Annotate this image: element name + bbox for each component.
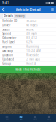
staticText: Fleet A [26, 62, 36, 65]
staticText: Location [2, 53, 13, 57]
staticText: 48 mph [26, 32, 37, 35]
button[interactable]: Group [0, 62, 56, 66]
staticText: Running [26, 45, 39, 48]
button[interactable]: Back [0, 6, 7, 13]
staticText: 62% [26, 41, 32, 44]
button[interactable]: Driver [0, 23, 56, 28]
staticText: 10:24 AM [26, 49, 40, 53]
staticText: Last Stop [2, 49, 13, 53]
staticText: Status [2, 28, 9, 31]
staticText: 83,412 [26, 36, 37, 40]
staticText: Vehicle ID [2, 19, 17, 23]
button[interactable]: Alerts [28, 114, 42, 122]
staticText: Alerts [33, 118, 37, 120]
staticText: History [15, 14, 24, 18]
button[interactable]: History [14, 14, 26, 18]
staticText: 9:41 [2, 1, 9, 5]
button[interactable]: More [42, 114, 56, 122]
staticText: Speed [2, 32, 11, 35]
staticText: Details [4, 14, 13, 18]
staticText: Active [26, 28, 34, 31]
staticText: Fuel Level [2, 41, 15, 44]
button[interactable]: Odometer [0, 36, 56, 40]
staticText: Vehicle Detail [15, 7, 40, 12]
button[interactable]: Fleet [0, 114, 14, 122]
staticText: Track This Vehicle [15, 68, 41, 71]
button[interactable]: Updated [0, 57, 56, 62]
button[interactable]: Fuel Level [0, 40, 56, 45]
button[interactable]: Status [0, 27, 56, 32]
staticText: Odometer [2, 36, 16, 40]
staticText: M. Reyes [26, 23, 37, 27]
button[interactable]: Track This Vehicle [0, 66, 56, 73]
button[interactable]: Vehicle ID [0, 19, 56, 23]
staticText: 2 min ago [26, 58, 40, 61]
button[interactable]: Menu [49, 6, 56, 13]
staticText: More [47, 118, 51, 120]
staticText: Driver [2, 23, 10, 27]
button[interactable]: Engine [0, 45, 56, 49]
staticText: Map [19, 118, 22, 120]
button[interactable]: Map [14, 114, 28, 122]
staticText: Riverside [26, 53, 39, 57]
button[interactable]: Speed [0, 32, 56, 36]
button[interactable]: Details [3, 14, 14, 18]
button[interactable]: Last Stop [0, 49, 56, 53]
staticText: Group [2, 62, 11, 65]
staticText: Engine [2, 45, 12, 48]
button[interactable]: Location [0, 53, 56, 57]
staticText: Updated [2, 58, 14, 61]
staticText: Fleet [5, 118, 8, 120]
staticText: TR-4021 [26, 19, 38, 23]
